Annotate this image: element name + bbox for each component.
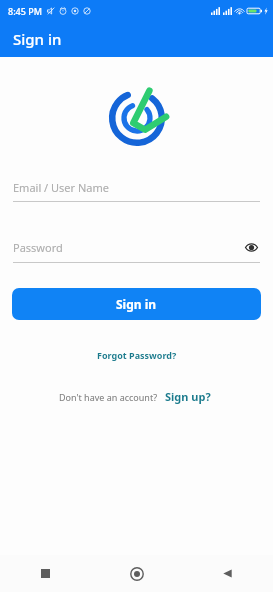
staticText: 8:45 PM: [8, 5, 42, 17]
staticText: Sign in: [13, 29, 62, 49]
button[interactable]: Sign in: [12, 288, 261, 320]
staticText: Email / User Name: [13, 180, 260, 195]
staticText: Don't have an account?: [59, 391, 158, 403]
staticText: Sign up?: [165, 389, 211, 404]
button[interactable]: Show password: [242, 238, 260, 256]
staticText: Sign in: [116, 296, 157, 312]
button[interactable]: Forgot Password?: [91, 346, 183, 364]
button[interactable]: Email / User Name: [13, 180, 260, 202]
button[interactable]: Sign up?: [162, 387, 214, 406]
button[interactable]: Recents: [0, 555, 91, 592]
button[interactable]: Back: [182, 555, 273, 592]
staticText: Password: [13, 240, 242, 255]
staticText: Forgot Password?: [97, 349, 177, 361]
button[interactable]: Home: [91, 555, 182, 592]
button[interactable]: Password: [13, 238, 260, 263]
